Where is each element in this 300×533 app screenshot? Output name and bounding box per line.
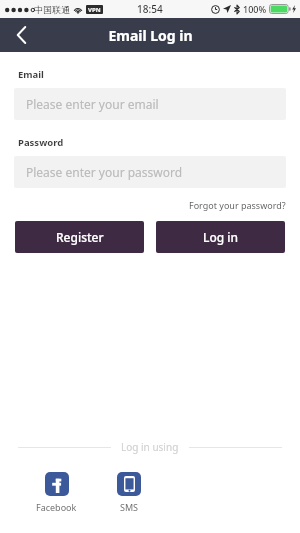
other: SMS	[117, 472, 141, 496]
button[interactable]: Please enter your email	[14, 88, 286, 120]
staticText: Forgot your password?	[189, 199, 286, 211]
staticText: Email Log in	[108, 26, 193, 45]
button[interactable]: Facebook	[34, 472, 79, 513]
button[interactable]: Register	[15, 221, 144, 253]
staticText: SMS	[120, 501, 139, 513]
staticText: Register	[56, 229, 104, 245]
button[interactable]: Back	[0, 18, 42, 52]
staticText: 中国联通	[34, 4, 70, 15]
button[interactable]: SMS	[115, 472, 143, 513]
staticText: Log in	[203, 229, 239, 245]
button[interactable]: Please enter your password	[14, 156, 286, 188]
staticText: Facebook	[36, 501, 77, 513]
staticText: Email	[18, 68, 44, 81]
staticText: VPN	[88, 6, 101, 14]
staticText: Please enter your password	[26, 164, 183, 180]
staticText: Password	[18, 136, 64, 149]
staticText: 18:54	[137, 2, 163, 16]
button[interactable]: Forgot your password?	[187, 197, 288, 213]
staticText: 100%	[243, 3, 267, 15]
staticText: Log in using	[121, 440, 179, 454]
other: Facebook	[45, 472, 69, 496]
staticText: Please enter your email	[26, 96, 159, 112]
button[interactable]: Log in	[156, 221, 285, 253]
